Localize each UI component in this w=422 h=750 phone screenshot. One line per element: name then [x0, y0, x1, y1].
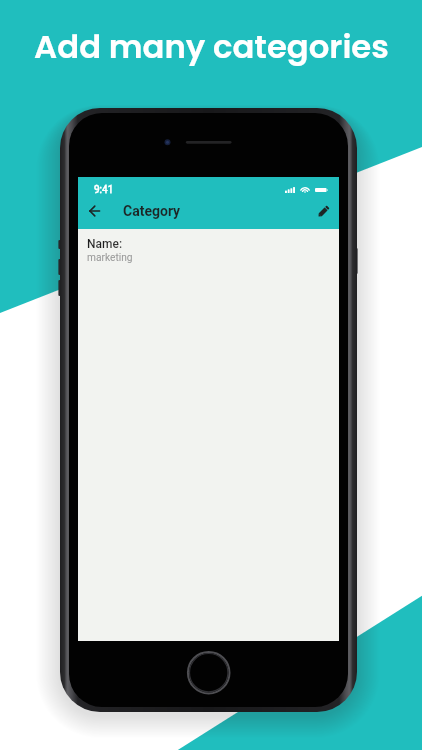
staticText: 9:41: [94, 184, 114, 196]
staticText: marketing: [87, 252, 133, 264]
staticText: Name:: [87, 237, 123, 251]
button[interactable]: Edit: [312, 200, 334, 222]
button[interactable]: Back: [83, 200, 105, 222]
staticText: Add many categories: [34, 24, 389, 69]
staticText: Category: [123, 203, 181, 219]
